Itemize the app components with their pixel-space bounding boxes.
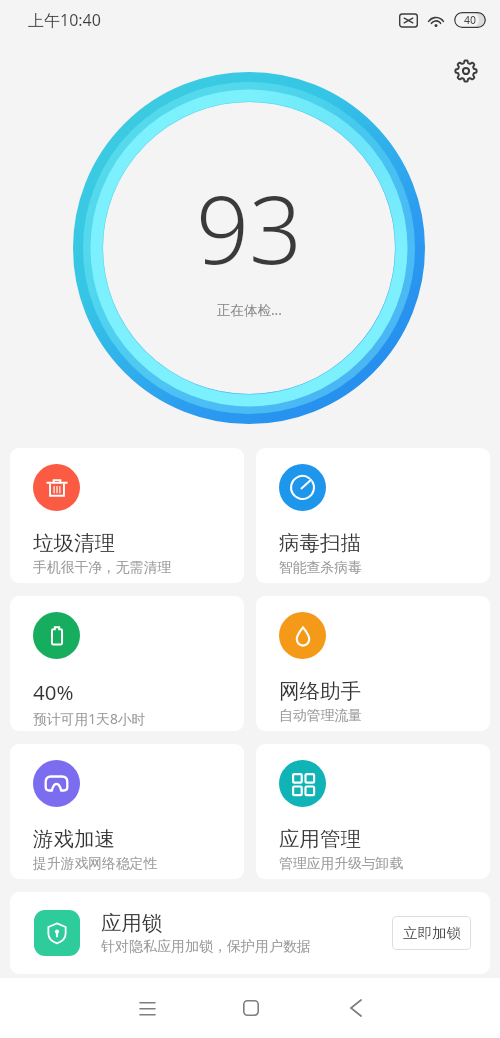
staticText: 应用管理 <box>279 826 361 852</box>
staticText: 针对隐私应用加锁，保护用户数据 <box>101 938 311 956</box>
button[interactable]: 立即加锁 <box>392 916 471 950</box>
staticText: 应用锁 <box>101 910 163 936</box>
button[interactable]: 应用锁 <box>10 892 490 974</box>
button[interactable]: Settings <box>445 50 487 92</box>
button[interactable]: 40% <box>10 596 244 731</box>
staticText: 网络助手 <box>279 678 361 704</box>
staticText: 垃圾清理 <box>33 530 115 556</box>
staticText: 手机很干净，无需清理 <box>33 559 171 576</box>
staticText: 40% <box>33 678 74 706</box>
staticText: 病毒扫描 <box>279 530 361 556</box>
staticText: 上午10:40 <box>28 9 101 31</box>
button[interactable]: Back <box>322 978 390 1038</box>
staticText: 正在体检... <box>217 301 282 319</box>
button[interactable]: Recent apps <box>113 978 181 1038</box>
button[interactable]: 游戏加速 <box>10 744 244 879</box>
staticText: 游戏加速 <box>33 826 115 852</box>
button[interactable]: 应用管理 <box>256 744 490 879</box>
staticText: 40 <box>464 13 477 27</box>
button[interactable]: 病毒扫描 <box>256 448 490 583</box>
staticText: 智能查杀病毒 <box>279 559 362 576</box>
staticText: 自动管理流量 <box>279 707 362 724</box>
staticText: 提升游戏网络稳定性 <box>33 855 158 872</box>
button[interactable]: Home <box>217 978 285 1038</box>
button[interactable]: 网络助手 <box>256 596 490 731</box>
button[interactable]: 垃圾清理 <box>10 448 244 583</box>
staticText: 管理应用升级与卸载 <box>279 855 404 872</box>
staticText: 93 <box>196 165 303 292</box>
staticText: 立即加锁 <box>403 924 461 942</box>
staticText: 预计可用1天8小时 <box>33 709 146 728</box>
